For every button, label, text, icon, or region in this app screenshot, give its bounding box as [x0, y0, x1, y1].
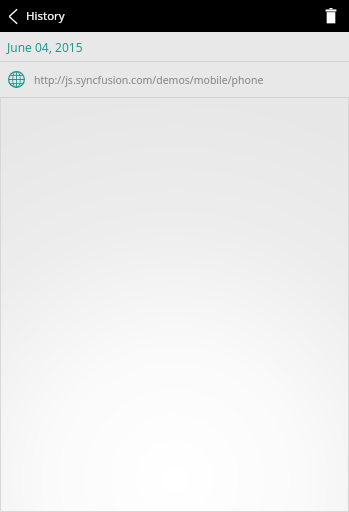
- staticText: http://js.syncfusion.com/demos/mobile/ph…: [34, 73, 264, 87]
- button[interactable]: Back: [0, 0, 75, 32]
- button[interactable]: Delete history: [313, 0, 349, 32]
- staticText: History: [26, 8, 65, 24]
- staticText: June 04, 2015: [7, 39, 83, 55]
- button[interactable]: http://js.syncfusion.com/demos/mobile/ph…: [0, 62, 349, 97]
